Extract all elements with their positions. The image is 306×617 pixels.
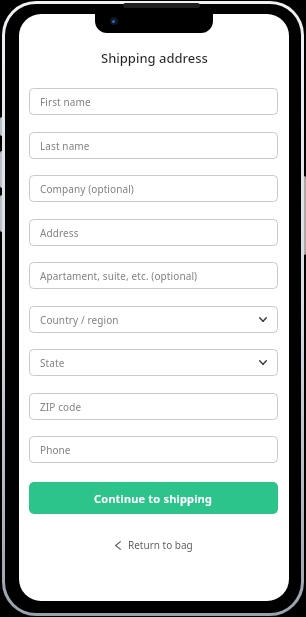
button[interactable]: Country / region bbox=[29, 306, 278, 333]
staticText: Phone bbox=[40, 443, 71, 457]
staticText: Continue to shipping bbox=[94, 491, 213, 506]
button[interactable]: Last name bbox=[29, 132, 278, 159]
staticText: Address bbox=[40, 226, 79, 240]
button[interactable]: State bbox=[29, 349, 278, 376]
button[interactable]: Return to bag bbox=[115, 538, 193, 552]
button[interactable]: Address bbox=[29, 219, 278, 246]
staticText: Return to bag bbox=[128, 538, 193, 552]
staticText: Apartament, suite, etc. (optional) bbox=[40, 269, 198, 283]
staticText: ZIP code bbox=[40, 400, 82, 414]
button[interactable]: Phone bbox=[29, 436, 278, 463]
staticText: Last name bbox=[40, 139, 90, 153]
button[interactable]: ZIP code bbox=[29, 393, 278, 420]
staticText: First name bbox=[40, 95, 91, 109]
button[interactable]: Company (optional) bbox=[29, 175, 278, 202]
staticText: Shipping address bbox=[101, 49, 208, 67]
staticText: Country / region bbox=[40, 313, 119, 327]
button[interactable]: First name bbox=[29, 88, 278, 115]
staticText: State bbox=[40, 356, 65, 370]
staticText: Company (optional) bbox=[40, 182, 134, 196]
button[interactable]: Continue to shipping bbox=[29, 482, 278, 514]
button[interactable]: Apartament, suite, etc. (optional) bbox=[29, 262, 278, 289]
